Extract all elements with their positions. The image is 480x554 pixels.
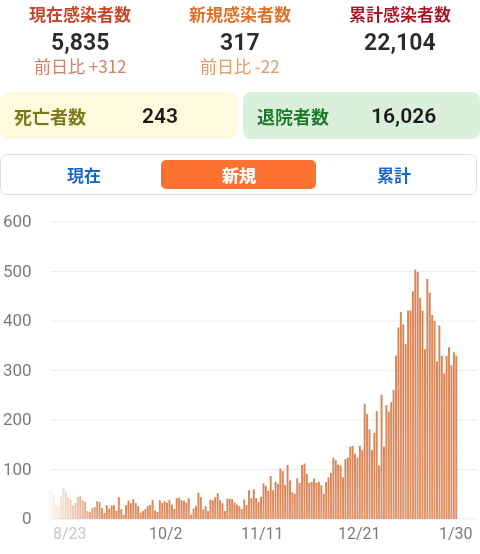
staticText: 前日比 +312 — [34, 53, 127, 78]
staticText: 0 — [22, 508, 32, 528]
button[interactable]: 現在 — [6, 160, 161, 189]
staticText: 100 — [3, 459, 32, 479]
staticText: 317 — [220, 29, 260, 56]
staticText: 前日比 -22 — [200, 53, 280, 78]
staticText: 5,835 — [51, 29, 110, 56]
staticText: 現在感染者数 — [29, 1, 131, 26]
staticText: 新規感染者数 — [189, 1, 291, 26]
button[interactable]: 退院者数 — [243, 92, 480, 139]
staticText: 500 — [3, 261, 32, 281]
staticText: 400 — [3, 310, 32, 330]
staticText: 1/30 — [439, 524, 473, 543]
staticText: 累計 — [377, 162, 411, 187]
button[interactable]: 累計 — [316, 160, 471, 189]
staticText: 243 — [142, 104, 179, 129]
staticText: 退院者数 — [257, 103, 329, 129]
staticText: 現在 — [67, 162, 101, 187]
staticText: 新規 — [222, 162, 256, 187]
staticText: 16,026 — [371, 104, 437, 129]
staticText: 11/11 — [241, 524, 284, 543]
button[interactable]: 死亡者数 — [0, 92, 237, 139]
button[interactable]: 累計感染者数 — [320, 0, 480, 85]
staticText: 8/23 — [53, 524, 87, 543]
staticText: 22,104 — [364, 29, 436, 56]
button[interactable]: 新規 — [161, 160, 316, 189]
staticText: 12/21 — [338, 524, 381, 543]
staticText: 600 — [3, 211, 32, 231]
staticText: 300 — [3, 360, 32, 380]
staticText: 200 — [3, 409, 32, 429]
button[interactable]: 新規感染者数 — [160, 0, 320, 85]
staticText: 10/2 — [149, 524, 183, 543]
staticText: 累計感染者数 — [349, 1, 451, 26]
button[interactable]: 現在感染者数 — [0, 0, 160, 85]
staticText: 死亡者数 — [14, 103, 86, 129]
